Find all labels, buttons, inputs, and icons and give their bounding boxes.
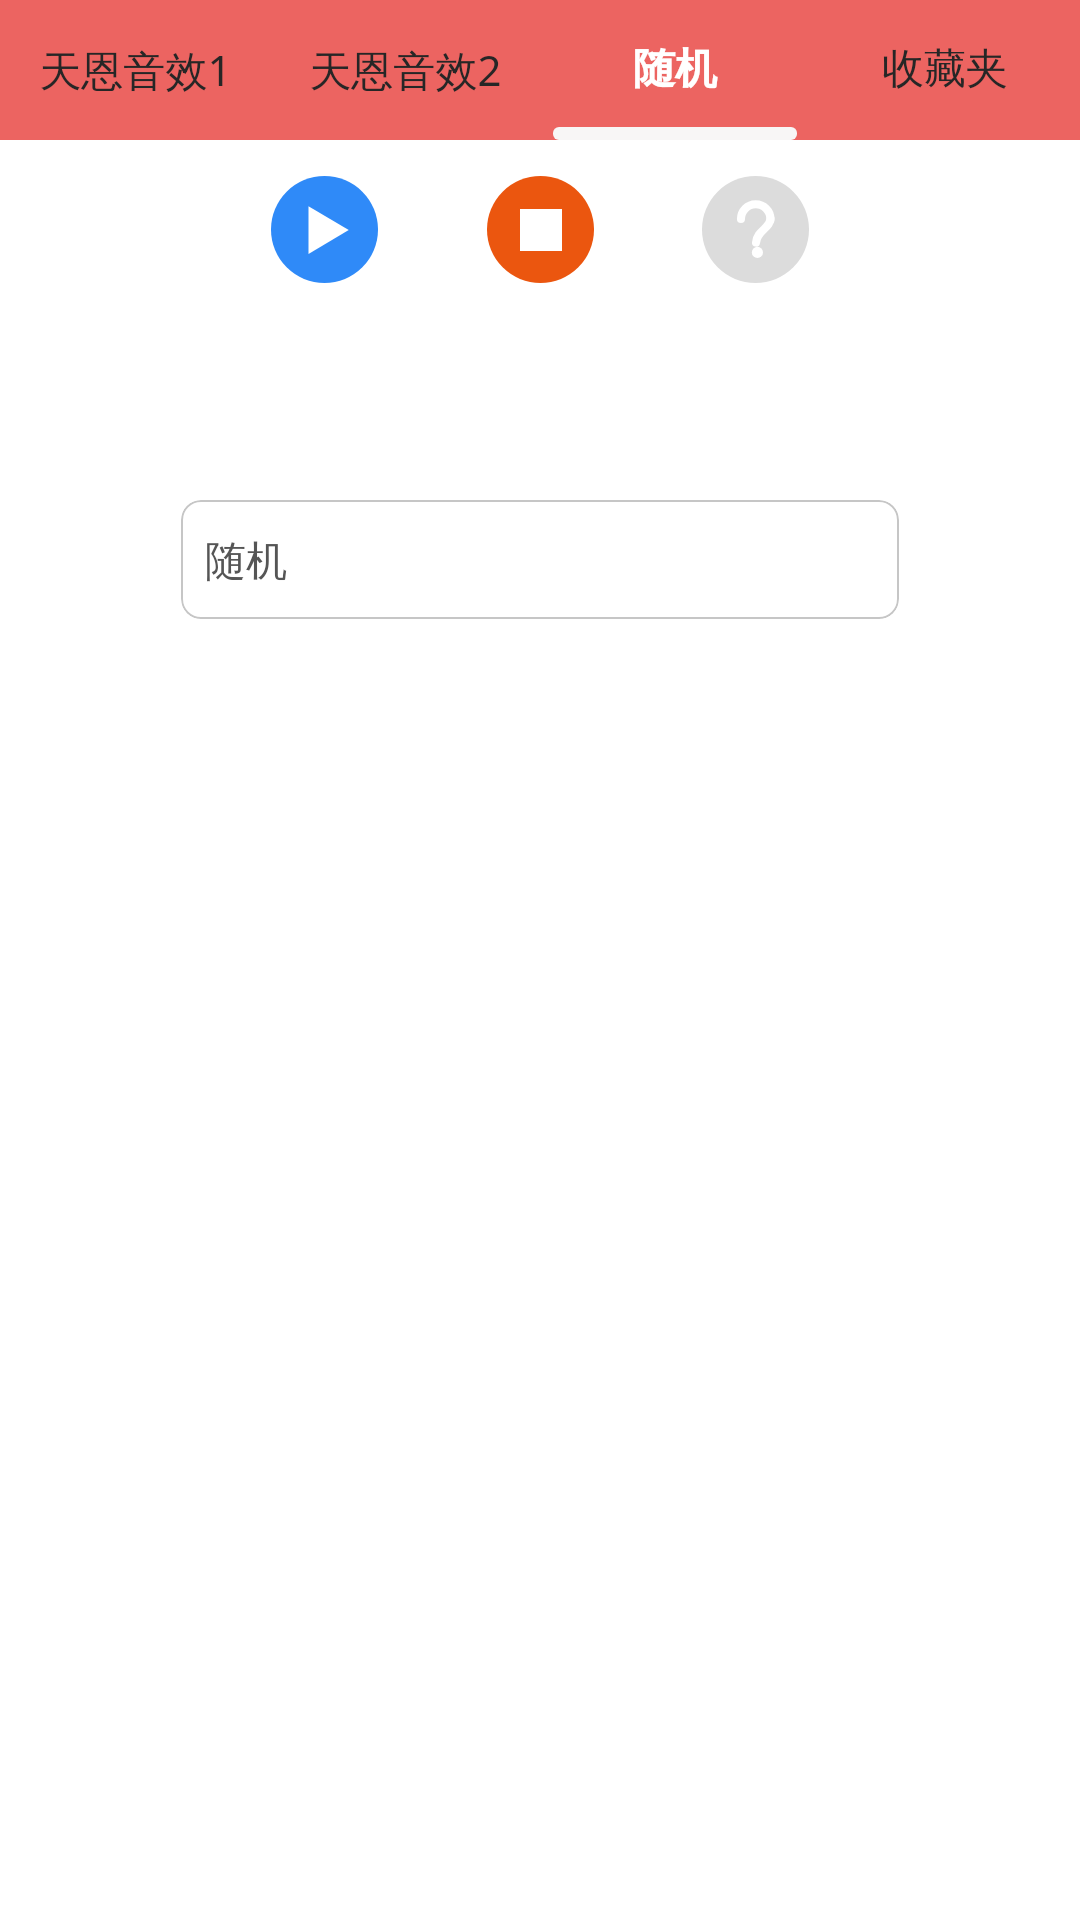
button[interactable]: 天恩音效2 [270,0,540,140]
button[interactable]: 收藏夹 [810,0,1080,140]
button[interactable]: 随机 [540,0,810,140]
button[interactable]: Stop [487,176,594,283]
staticText: 天恩音效1 [39,41,232,98]
button[interactable]: Play [271,176,378,283]
staticText: 天恩音效2 [309,41,502,98]
staticText: 收藏夹 [882,43,1008,96]
staticText: 随机 [205,536,287,588]
button[interactable]: Help [702,176,809,283]
button[interactable]: 天恩音效1 [0,0,270,140]
staticText: 随机 [633,43,717,96]
button[interactable]: 随机 [181,500,899,619]
